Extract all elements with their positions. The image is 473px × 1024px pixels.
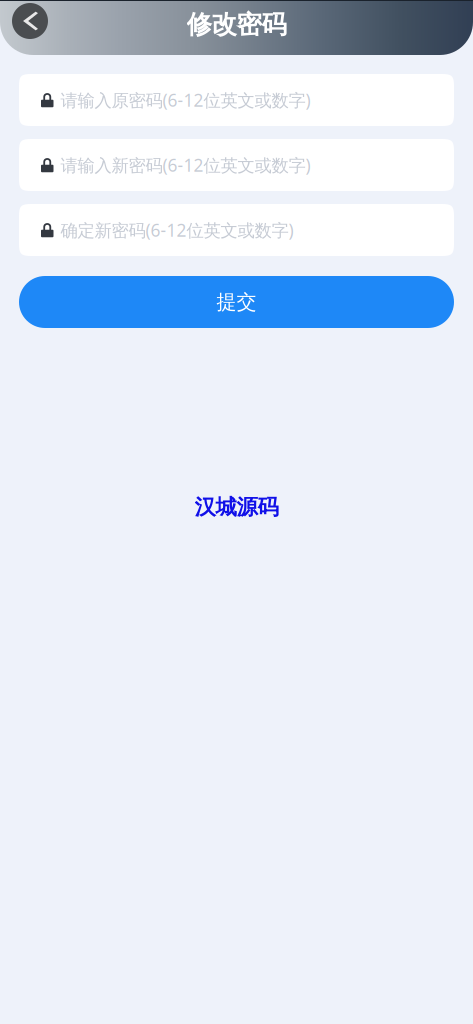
button[interactable]: 确定新密码(6-12位英文或数字) bbox=[19, 204, 454, 256]
staticText: 汉城源码 bbox=[194, 494, 278, 520]
button[interactable]: Back bbox=[8, 0, 52, 42]
staticText: 修改密码 bbox=[186, 9, 286, 40]
staticText: 确定新密码(6-12位英文或数字) bbox=[60, 218, 293, 241]
button[interactable]: 请输入新密码(6-12位英文或数字) bbox=[19, 139, 454, 191]
staticText: 请输入新密码(6-12位英文或数字) bbox=[60, 153, 310, 176]
staticText: 请输入原密码(6-12位英文或数字) bbox=[60, 88, 310, 111]
button[interactable]: 提交 bbox=[19, 276, 454, 328]
button[interactable]: 请输入原密码(6-12位英文或数字) bbox=[19, 74, 454, 126]
staticText: 提交 bbox=[216, 290, 256, 314]
